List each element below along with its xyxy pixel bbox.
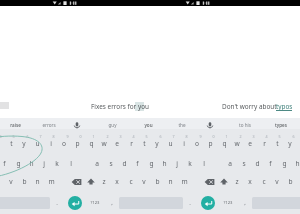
button[interactable]: 0 [76,133,84,140]
button[interactable]: m [45,176,57,187]
button[interactable]: 4 [129,133,137,140]
button[interactable]: c [258,176,270,187]
button[interactable]: 3 [249,133,257,140]
button[interactable]: b [18,176,30,187]
button[interactable]: v [138,176,150,187]
button[interactable]: 1 [89,133,97,140]
button[interactable]: i [45,138,57,149]
button[interactable]: guy [100,120,124,130]
button[interactable]: c [125,176,137,187]
button[interactable]: j [38,158,50,169]
button[interactable]: 9 [63,133,71,140]
button[interactable]: Backspace [204,177,216,187]
button[interactable]: 7 [169,133,177,140]
button[interactable]: . [186,198,194,208]
button[interactable]: m [178,176,190,187]
button[interactable]: types [269,120,293,130]
button[interactable]: Voice input [205,120,215,130]
button[interactable]: f [264,158,276,169]
button[interactable]: errors [37,120,61,130]
button[interactable]: 5 [142,133,150,140]
button[interactable]: 3 [116,133,124,140]
button[interactable]: 8 [182,133,190,140]
button[interactable]: h [291,158,300,169]
button[interactable]: 1 [222,133,230,140]
button[interactable]: t [271,138,283,149]
button[interactable]: z [231,176,243,187]
button[interactable]: Backspace [71,177,83,187]
button[interactable]: z [98,176,110,187]
button[interactable]: a [224,158,236,169]
button[interactable]: g [278,158,290,169]
button[interactable]: p [71,138,83,149]
button[interactable]: 6 [23,133,31,140]
button[interactable]: l [65,158,77,169]
button[interactable]: i [178,138,190,149]
button[interactable]: j [171,158,183,169]
button[interactable]: Shift [219,177,229,187]
button[interactable]: q [218,138,230,149]
button[interactable]: raise [3,120,27,130]
button[interactable]: f [131,158,143,169]
button[interactable]: Status bar [0,0,300,6]
button[interactable]: k [51,158,63,169]
button[interactable]: 6 [289,133,297,140]
button[interactable]: v [271,176,283,187]
button[interactable]: n [31,176,43,187]
button[interactable]: w [98,138,110,149]
button[interactable]: o [191,138,203,149]
button[interactable]: 6 [156,133,164,140]
button[interactable]: u [31,138,43,149]
button[interactable]: q [85,138,97,149]
button[interactable]: Don't worry about [222,100,294,112]
button[interactable]: v [5,176,17,187]
button[interactable]: y [284,138,296,149]
button[interactable]: r [258,138,270,149]
button[interactable]: g [12,158,24,169]
button[interactable]: d [251,158,263,169]
button[interactable]: x [244,176,256,187]
button[interactable]: a [91,158,103,169]
button[interactable]: typos [276,100,296,112]
button[interactable]: 2 [236,133,244,140]
button[interactable]: Shift [86,177,96,187]
button[interactable]: b [284,176,296,187]
button[interactable]: e [244,138,256,149]
button[interactable]: s [238,158,250,169]
button[interactable]: , [241,198,249,208]
button[interactable]: to his [233,120,257,130]
button[interactable]: 9 [196,133,204,140]
button[interactable]: t [138,138,150,149]
button[interactable]: 4 [262,133,270,140]
button[interactable]: , [108,198,116,208]
button[interactable]: h [158,158,170,169]
button[interactable]: ?123 [87,198,103,208]
button[interactable]: s [105,158,117,169]
button[interactable]: p [204,138,216,149]
button[interactable]: x [111,176,123,187]
button[interactable]: Enter [68,196,82,210]
button[interactable]: u [164,138,176,149]
button[interactable]: b [151,176,163,187]
button[interactable]: 0 [209,133,217,140]
button[interactable]: f [0,158,10,169]
button[interactable]: g [145,158,157,169]
button[interactable]: Fixes errors for you [91,100,171,112]
button[interactable]: h [25,158,37,169]
button[interactable]: w [231,138,243,149]
button[interactable]: 4 [0,133,4,140]
button[interactable]: . [53,198,61,208]
button[interactable]: r [125,138,137,149]
button[interactable]: n [164,176,176,187]
button[interactable]: 5 [275,133,283,140]
button[interactable]: d [118,158,130,169]
button[interactable]: l [198,158,210,169]
button[interactable]: y [151,138,163,149]
